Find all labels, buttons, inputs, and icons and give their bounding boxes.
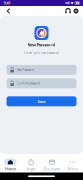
button[interactable]: Confirm password: [6, 78, 76, 88]
staticText: New Password: [27, 42, 55, 47]
button[interactable]: New Password: [6, 65, 76, 75]
button[interactable]: Discounts: [41, 158, 62, 172]
button[interactable]: Menu: [72, 6, 80, 15]
staticText: More: [68, 166, 78, 171]
button[interactable]: Back: [4, 6, 13, 16]
staticText: Apps: [27, 166, 36, 171]
button[interactable]: More: [62, 158, 83, 172]
button[interactable]: Save: [6, 96, 76, 106]
button[interactable]: Home: [0, 158, 21, 172]
staticText: Home: [5, 166, 16, 171]
button[interactable]: Support: [64, 6, 72, 15]
staticText: Confirm password: [16, 82, 40, 85]
staticText: New Password: [16, 68, 34, 72]
staticText: 9:41: [3, 0, 10, 6]
staticText: Discounts: [43, 166, 60, 171]
staticText: Create your new password: [24, 51, 59, 55]
staticText: Save: [37, 99, 45, 104]
button[interactable]: Apps: [21, 158, 42, 172]
